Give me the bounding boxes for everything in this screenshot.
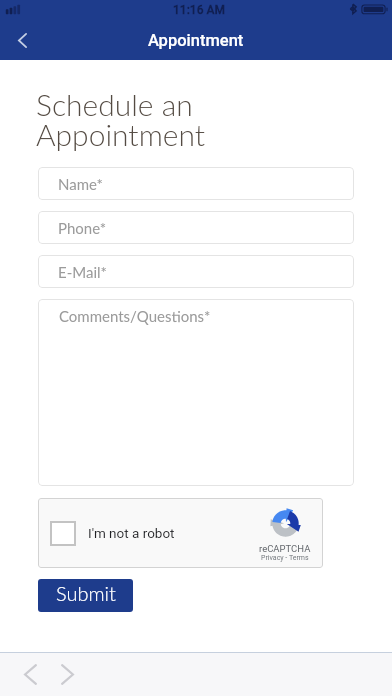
staticText: reCAPTCHA (259, 543, 311, 554)
staticText: Schedule an Appointment (36, 86, 206, 152)
staticText: Name* (58, 175, 103, 193)
staticText: Privacy - Terms (261, 554, 309, 562)
staticText: Comments/Questions* (59, 307, 211, 325)
staticText: I'm not a robot (88, 525, 175, 541)
button[interactable]: Forward (48, 653, 86, 696)
button[interactable]: Comments/Questions* (38, 299, 354, 486)
staticText: 11:16 AM (173, 3, 225, 17)
button[interactable]: E-Mail* (38, 255, 354, 288)
button[interactable]: I'm not a robot checkbox (50, 521, 76, 546)
button[interactable]: Name* (38, 167, 354, 200)
button[interactable]: Back (0, 20, 44, 60)
staticText: Phone* (58, 219, 107, 237)
staticText: E-Mail* (58, 263, 107, 281)
staticText: Appointment (148, 31, 244, 50)
button[interactable]: Phone* (38, 211, 354, 244)
button[interactable]: Submit (38, 579, 133, 612)
staticText: Submit (56, 581, 116, 605)
button[interactable]: Back (11, 653, 49, 696)
